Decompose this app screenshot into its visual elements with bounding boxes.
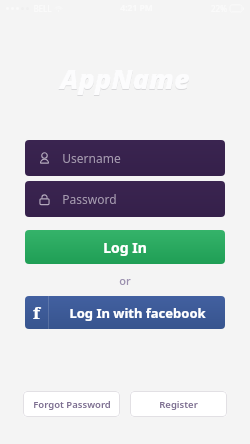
button[interactable]: Log In xyxy=(25,230,225,264)
staticText: or xyxy=(119,273,131,288)
button[interactable]: f xyxy=(25,296,225,329)
staticText: Username xyxy=(62,150,121,166)
staticText: AppName xyxy=(60,60,190,97)
staticText: Password xyxy=(62,191,117,207)
button[interactable]: Username xyxy=(25,140,225,176)
button[interactable]: Password xyxy=(25,181,225,217)
staticText: f xyxy=(33,301,40,324)
staticText: AppName xyxy=(60,61,190,98)
staticText: Log In with facebook xyxy=(69,304,206,322)
button[interactable]: Register xyxy=(130,391,227,417)
staticText: Log In xyxy=(103,238,147,257)
button[interactable]: Forgot Password xyxy=(23,391,120,417)
staticText: Register xyxy=(159,398,198,411)
staticText: Forgot Password xyxy=(33,398,111,411)
